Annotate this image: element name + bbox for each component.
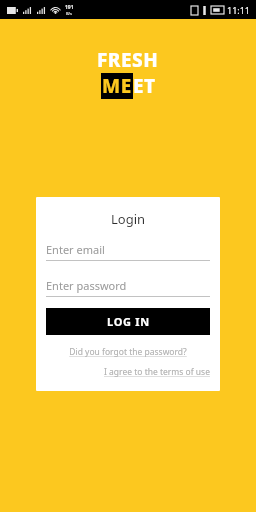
staticText: 191 [65, 4, 74, 11]
staticText: Did you forgot the password? [69, 346, 187, 358]
button[interactable]: LOG IN [46, 308, 210, 335]
staticText: Enter password [46, 278, 127, 293]
staticText: ET [133, 73, 156, 99]
button[interactable]: Did you forgot the password? [46, 346, 210, 358]
staticText: LOG IN [107, 314, 150, 329]
button[interactable]: I agree to the terms of use [46, 366, 210, 378]
staticText: B/s [66, 11, 73, 16]
staticText: FRESH [97, 47, 159, 73]
staticText: Enter email [46, 242, 105, 257]
button[interactable]: Enter password [46, 278, 210, 297]
button[interactable]: Enter email [46, 242, 210, 261]
staticText: Login [111, 210, 146, 228]
staticText: 11:11 [227, 4, 251, 16]
staticText: ME [102, 73, 132, 99]
staticText: I agree to the terms of use [104, 366, 210, 378]
